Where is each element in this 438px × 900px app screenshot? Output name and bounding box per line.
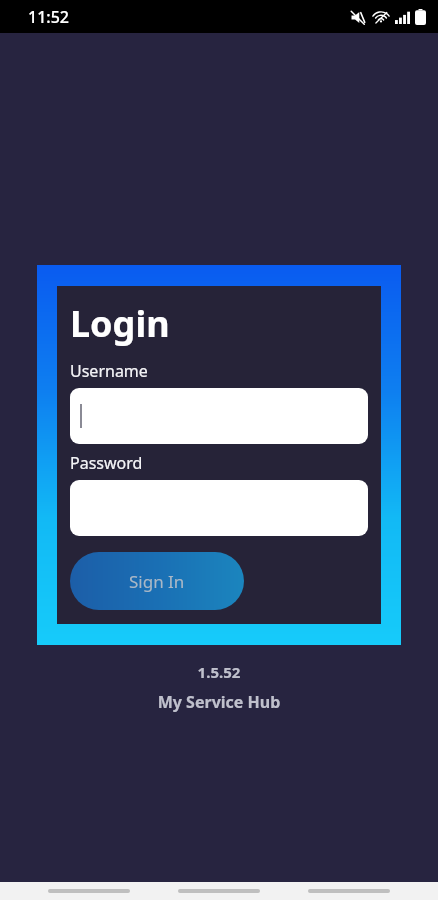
button[interactable]: Password field <box>70 480 368 536</box>
staticText: 11:52 <box>28 6 69 28</box>
staticText: My Service Hub <box>37 691 401 713</box>
button[interactable]: Username field <box>70 388 368 444</box>
button[interactable]: Navigation <box>308 889 390 893</box>
staticText: Password <box>70 452 143 474</box>
staticText: Login <box>70 299 170 348</box>
button[interactable]: Navigation <box>178 889 260 893</box>
button[interactable]: Navigation <box>48 889 130 893</box>
staticText: Sign In <box>129 570 185 593</box>
button[interactable]: Sign In <box>70 552 244 610</box>
staticText: Username <box>70 360 148 382</box>
staticText: 1.5.52 <box>37 662 401 682</box>
